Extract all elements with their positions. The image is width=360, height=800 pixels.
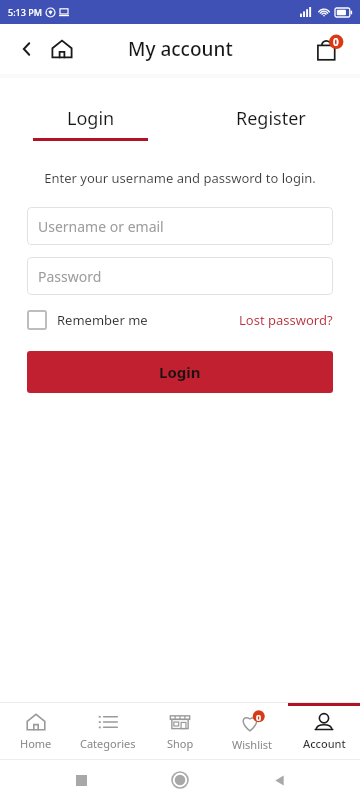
staticText: Home — [20, 736, 52, 751]
staticText: Username or email — [38, 217, 164, 236]
button[interactable]: Cart — [310, 30, 348, 68]
staticText: Shop — [167, 736, 194, 751]
button[interactable]: Home — [0, 703, 72, 759]
button[interactable]: Shop — [144, 703, 216, 759]
staticText: 5:13 PM — [8, 6, 42, 18]
staticText: Password — [38, 267, 102, 286]
button[interactable]: 0 — [216, 703, 288, 759]
button[interactable]: Password — [27, 257, 333, 295]
button[interactable]: Home — [46, 33, 78, 65]
button[interactable]: Account — [288, 703, 360, 759]
staticText: 0 — [333, 35, 339, 49]
button[interactable]: Categories — [72, 703, 144, 759]
staticText: Login — [67, 106, 115, 131]
button[interactable]: Back — [261, 762, 297, 798]
button[interactable]: Remember me — [27, 310, 148, 330]
staticText: 0 — [256, 711, 262, 723]
staticText: Enter your username and password to logi… — [0, 169, 360, 187]
button[interactable]: Home — [162, 762, 198, 798]
staticText: Account — [303, 736, 346, 751]
staticText: Login — [159, 362, 201, 382]
staticText: Register — [236, 106, 306, 131]
button[interactable]: Login — [0, 106, 180, 141]
button[interactable]: Recents — [63, 762, 99, 798]
staticText: My account — [128, 36, 233, 62]
button[interactable]: Register — [180, 106, 360, 141]
button[interactable]: Login — [27, 351, 333, 393]
staticText: Lost password? — [239, 311, 333, 329]
button[interactable]: Back — [14, 36, 40, 62]
button[interactable]: Username or email — [27, 207, 333, 245]
button[interactable]: Lost password? — [239, 311, 333, 329]
staticText: Wishlist — [232, 737, 273, 752]
staticText: Categories — [80, 736, 136, 751]
staticText: Remember me — [57, 311, 148, 329]
